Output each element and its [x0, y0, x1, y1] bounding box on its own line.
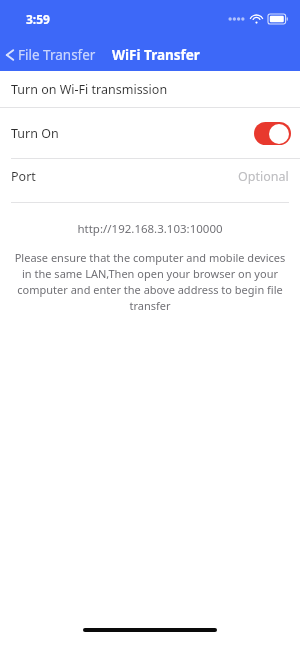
- staticText: http://192.168.3.103:10000: [0, 221, 300, 237]
- staticText: 3:59: [26, 11, 50, 27]
- button[interactable]: Turn On toggle: [254, 122, 291, 145]
- staticText: File Transfer: [18, 46, 96, 64]
- staticText: WiFi Transfer: [112, 46, 200, 64]
- button[interactable]: Turn On: [0, 108, 300, 158]
- button[interactable]: Back to File Transfer: [0, 46, 100, 64]
- staticText: Turn On: [11, 125, 59, 142]
- staticText: Optional: [238, 168, 289, 185]
- button[interactable]: Port: [0, 159, 300, 193]
- staticText: Port: [11, 168, 36, 185]
- staticText: Please ensure that the computer and mobi…: [12, 250, 288, 313]
- staticText: Turn on Wi-Fi transmission: [11, 81, 168, 98]
